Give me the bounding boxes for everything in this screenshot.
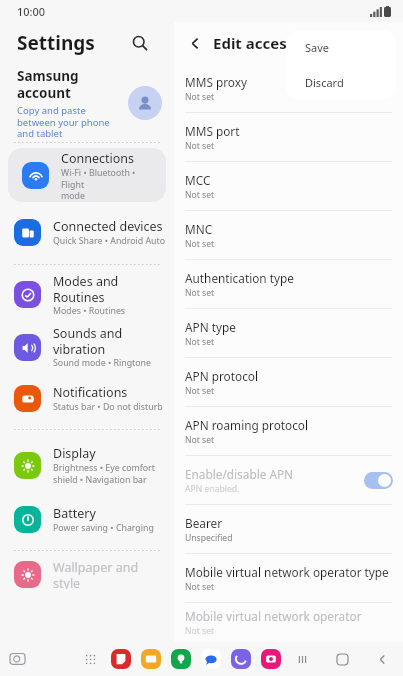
button[interactable]: Save xyxy=(286,30,396,65)
staticText: Mobile virtual network operator value xyxy=(185,608,393,624)
button[interactable]: App xyxy=(201,649,221,669)
staticText: Not set xyxy=(185,385,215,397)
staticText: Discard xyxy=(305,75,344,90)
button[interactable]: Notifications xyxy=(0,377,174,419)
button[interactable]: Search xyxy=(126,29,154,57)
button[interactable]: MMS proxy xyxy=(174,64,403,113)
button[interactable]: APN type xyxy=(174,309,403,358)
button[interactable]: Samsung account xyxy=(0,64,174,142)
staticText: MCC xyxy=(185,172,211,188)
button[interactable]: App xyxy=(171,649,191,669)
staticText: Notifications xyxy=(53,384,128,401)
staticText: APN type xyxy=(185,319,236,335)
staticText: MMS proxy xyxy=(185,74,247,90)
staticText: Wallpaper and style xyxy=(53,559,166,589)
staticText: Bearer xyxy=(185,515,223,531)
button[interactable]: App xyxy=(261,649,281,669)
staticText: Wi-Fi • Bluetooth • Flight mode xyxy=(61,167,158,201)
button[interactable]: MMS port xyxy=(174,113,403,162)
staticText: Copy and paste between your phone and ta… xyxy=(17,104,110,140)
staticText: Battery xyxy=(53,505,96,522)
staticText: Not set xyxy=(185,581,215,593)
button[interactable]: Home xyxy=(331,648,353,670)
staticText: Settings xyxy=(17,30,95,56)
staticText: Connected devices xyxy=(53,218,163,235)
button[interactable]: Bearer xyxy=(174,505,403,554)
staticText: Unspecified xyxy=(185,532,233,544)
staticText: Not set xyxy=(185,434,215,446)
staticText: Connections xyxy=(61,150,134,167)
button[interactable]: MCC xyxy=(174,162,403,211)
staticText: Samsung account xyxy=(17,67,79,102)
staticText: MNC xyxy=(185,221,213,237)
staticText: MMS port xyxy=(185,123,240,139)
button[interactable]: Recents xyxy=(6,648,28,670)
button[interactable]: Display xyxy=(0,440,174,490)
button[interactable]: App xyxy=(231,649,251,669)
staticText: APN roaming protocol xyxy=(185,417,309,433)
button[interactable]: Modes and Routines xyxy=(0,273,174,315)
button[interactable]: Connected devices xyxy=(0,208,174,256)
button[interactable]: Back xyxy=(182,30,208,56)
button[interactable]: Back xyxy=(371,648,393,670)
staticText: Not set xyxy=(185,238,215,250)
staticText: Save xyxy=(305,40,330,55)
button[interactable]: APN roaming protocol xyxy=(174,407,403,456)
staticText: Sound mode • Ringtone xyxy=(53,357,152,369)
staticText: APN enabled. xyxy=(185,483,240,495)
button[interactable]: Connections xyxy=(8,148,166,202)
staticText: Mobile virtual network operator type xyxy=(185,564,389,580)
staticText: Not set xyxy=(185,287,215,299)
staticText: APN protocol xyxy=(185,368,258,384)
staticText: Quick Share • Android Auto xyxy=(53,235,166,247)
button[interactable]: Enable/disable APN xyxy=(174,456,403,505)
button[interactable]: Apps xyxy=(79,648,101,670)
button[interactable]: App xyxy=(141,649,161,669)
button[interactable]: Authentication type xyxy=(174,260,403,309)
staticText: Not set xyxy=(185,625,215,637)
staticText: Edit access point xyxy=(213,33,338,53)
button[interactable]: Discard xyxy=(286,65,396,100)
staticText: 10:00 xyxy=(17,4,46,19)
staticText: Not set xyxy=(185,336,215,348)
button[interactable]: APN protocol xyxy=(174,358,403,407)
button[interactable]: Mobile virtual network operator type xyxy=(174,554,403,603)
staticText: Power saving • Charging xyxy=(53,522,154,534)
button[interactable]: Mobile virtual network operator value xyxy=(174,603,403,642)
button[interactable]: Battery xyxy=(0,498,174,540)
staticText: Enable/disable APN xyxy=(185,466,294,482)
button[interactable]: Wallpaper and style xyxy=(0,559,174,589)
staticText: Not set xyxy=(185,140,215,152)
staticText: Not set xyxy=(185,189,215,201)
button[interactable]: App xyxy=(111,649,131,669)
staticText: Status bar • Do not disturb xyxy=(53,401,163,413)
button[interactable]: Recent apps xyxy=(291,648,313,670)
staticText: Display xyxy=(53,445,96,462)
button[interactable]: MNC xyxy=(174,211,403,260)
staticText: Modes • Routines xyxy=(53,305,126,315)
staticText: Authentication type xyxy=(185,270,294,286)
staticText: Brightness • Eye comfort shield • Naviga… xyxy=(53,462,155,485)
button[interactable]: Sounds and vibration xyxy=(0,319,174,375)
button[interactable]: Enable APN xyxy=(364,472,393,489)
staticText: Not set xyxy=(185,91,215,103)
staticText: Modes and Routines xyxy=(53,273,166,305)
staticText: Sounds and vibration xyxy=(53,325,123,357)
